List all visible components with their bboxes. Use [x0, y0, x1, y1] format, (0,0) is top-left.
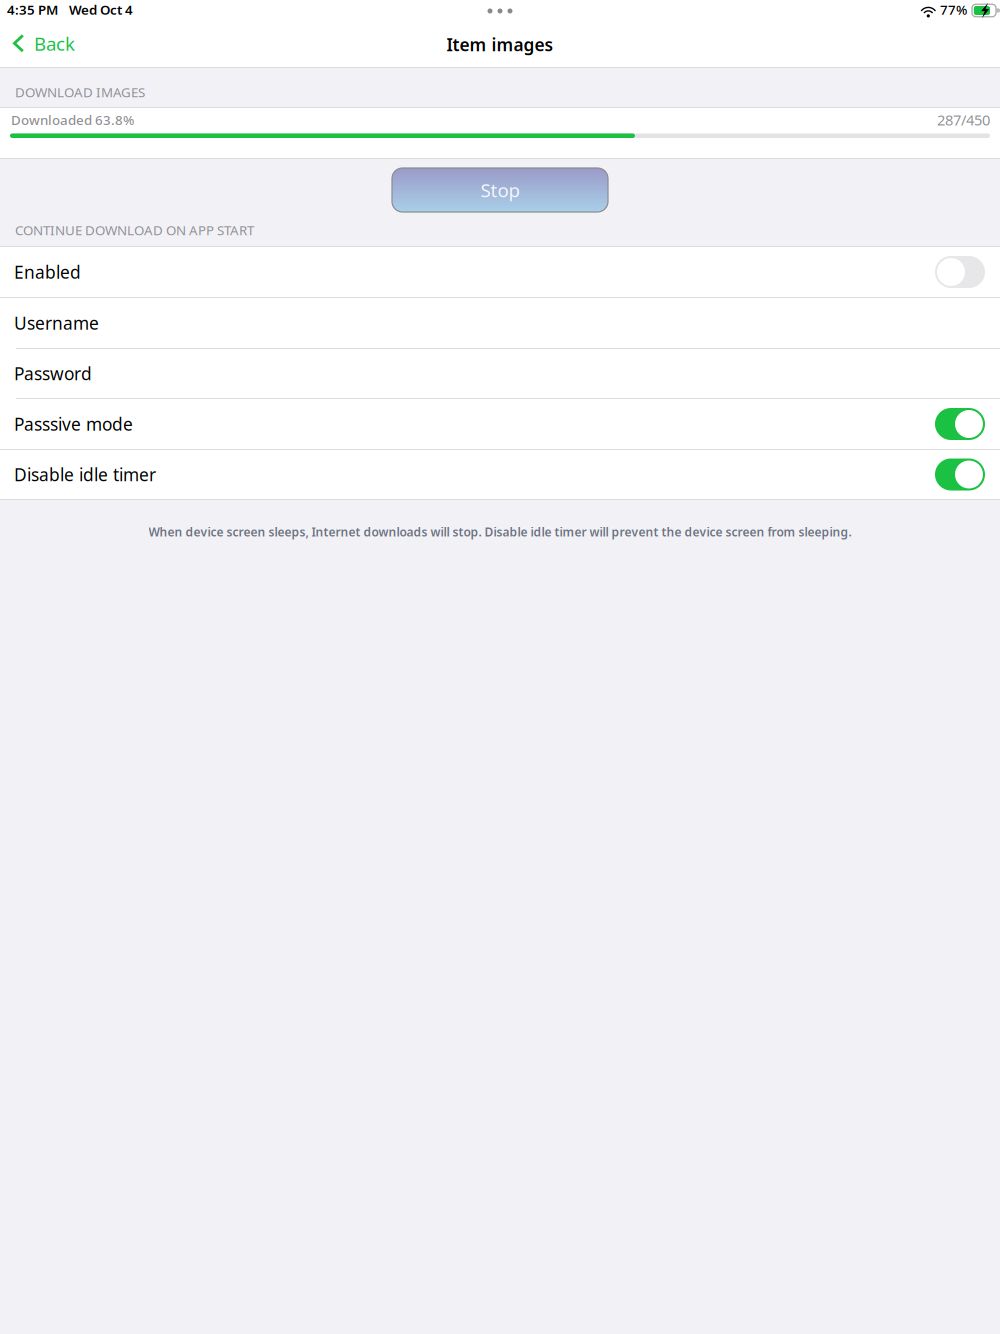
button[interactable]: Disable idle timer — [0, 450, 1000, 499]
staticText: 4:35 PM — [7, 1, 58, 18]
staticText: DOWNLOAD IMAGES — [15, 83, 145, 101]
staticText: Wed Oct 4 — [69, 1, 133, 18]
staticText: Downloaded 63.8% — [11, 111, 134, 129]
staticText: CONTINUE DOWNLOAD ON APP START — [15, 221, 254, 239]
button[interactable]: Username — [0, 298, 1000, 348]
staticText: Passsive mode — [14, 412, 133, 435]
staticText: When device screen sleeps, Internet down… — [148, 524, 851, 540]
staticText: 287/450 — [937, 110, 990, 129]
button[interactable]: Enabled — [0, 247, 1000, 297]
staticText: Back — [34, 31, 75, 56]
button[interactable]: Stop — [392, 168, 608, 212]
staticText: 77% — [940, 1, 967, 18]
staticText: Username — [14, 311, 99, 334]
staticText: Enabled — [14, 260, 81, 283]
staticText: Item images — [446, 33, 553, 56]
button[interactable]: Passsive mode — [0, 399, 1000, 449]
button[interactable]: Back — [0, 22, 87, 67]
staticText: Disable idle timer — [14, 463, 156, 486]
staticText: Stop — [480, 178, 519, 202]
button[interactable]: Password — [0, 349, 1000, 398]
staticText: Password — [14, 362, 92, 385]
